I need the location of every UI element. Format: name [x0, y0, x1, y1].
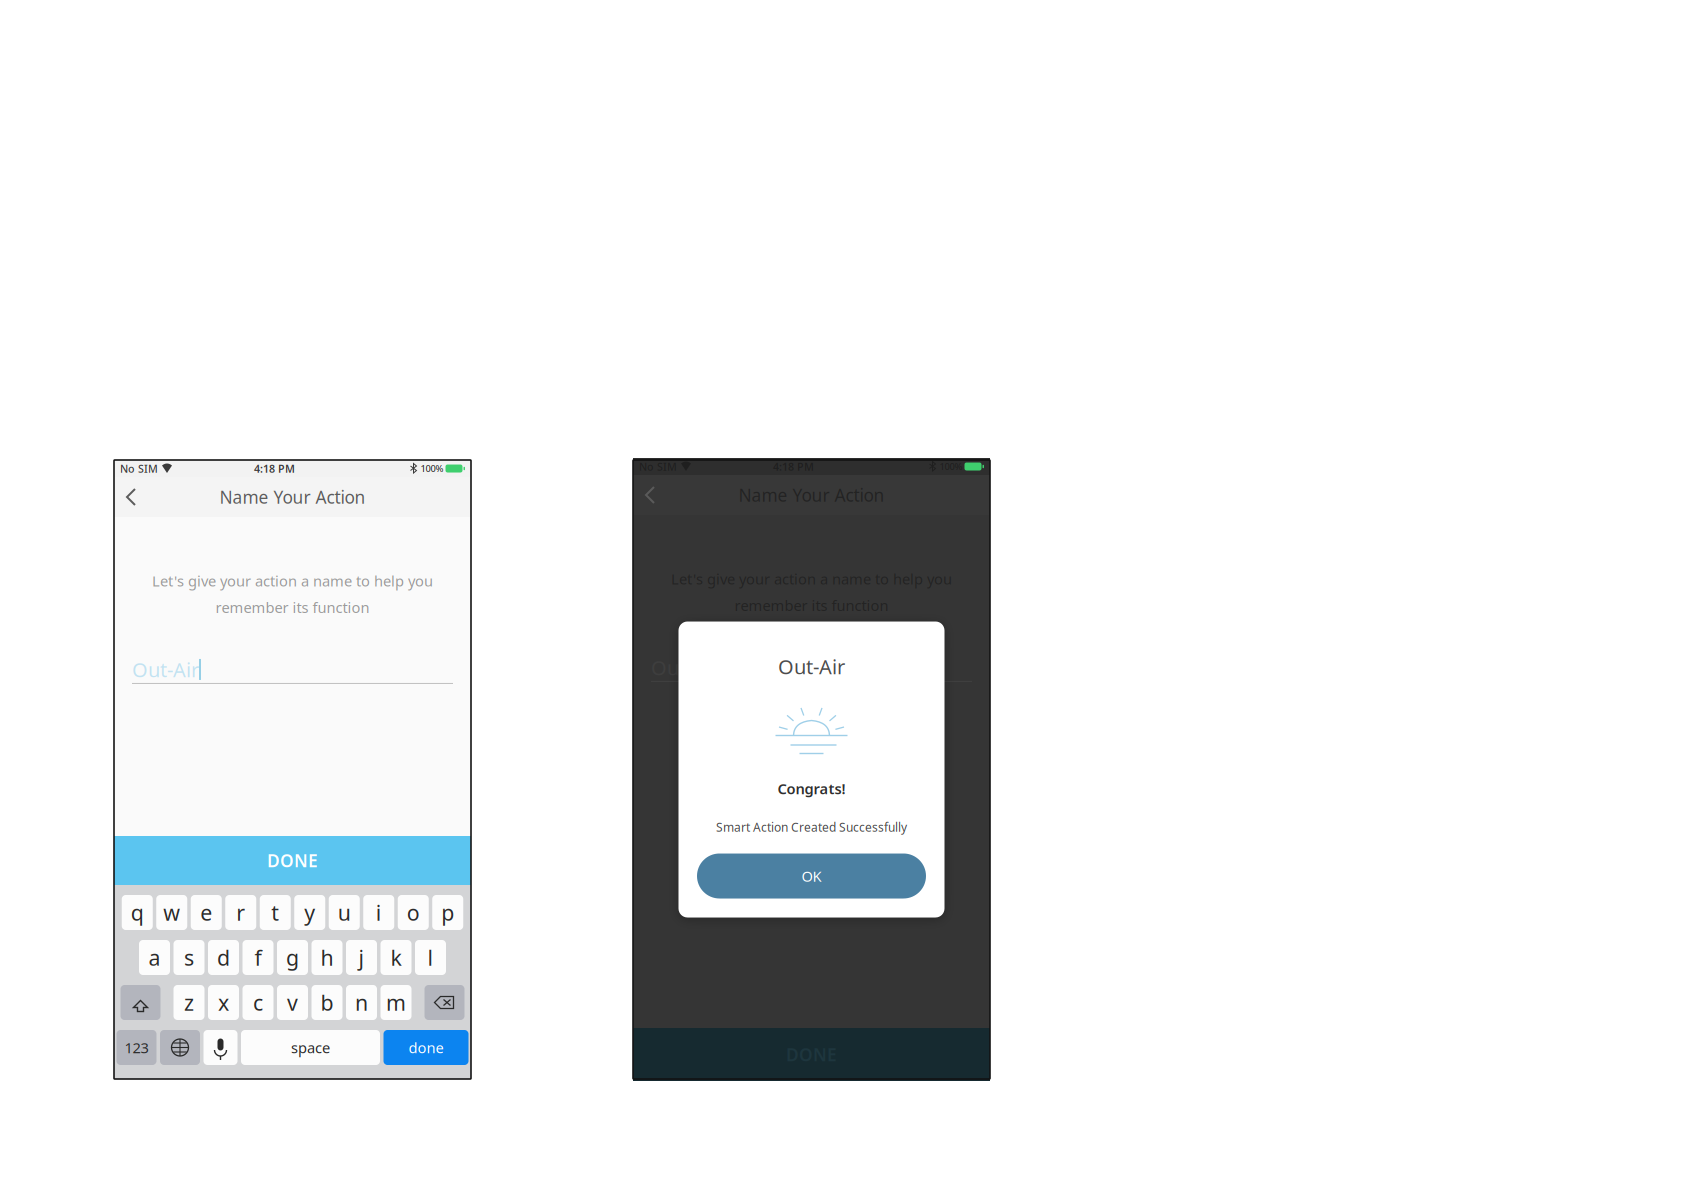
button[interactable]: k	[380, 940, 411, 975]
staticText: Out-Air	[132, 656, 199, 683]
staticText: remember its function	[734, 595, 888, 615]
staticText: w	[163, 898, 180, 927]
button[interactable]: DONE	[114, 836, 471, 885]
staticText: Smart Action Created Successfully	[716, 819, 907, 835]
staticText: c	[253, 988, 263, 1017]
button[interactable]: l	[415, 940, 446, 975]
staticText: l	[427, 943, 433, 972]
button[interactable]: j	[346, 940, 377, 975]
staticText: s	[184, 943, 194, 972]
button[interactable]: g	[277, 940, 308, 975]
button[interactable]: w	[156, 895, 187, 930]
staticText: d	[217, 943, 230, 972]
staticText: Out-Air	[778, 653, 845, 680]
button[interactable]: OK	[697, 853, 926, 898]
staticText: q	[131, 898, 144, 927]
staticText: 4:18 PM	[773, 459, 814, 474]
button[interactable]: t	[260, 895, 291, 930]
button[interactable]: space	[241, 1030, 380, 1065]
button[interactable]: y	[294, 895, 325, 930]
staticText: o	[407, 898, 420, 927]
staticText: y	[304, 898, 315, 927]
button[interactable]: o	[398, 895, 429, 930]
staticText: e	[200, 898, 212, 927]
button[interactable]: d	[208, 940, 239, 975]
button[interactable]: m	[380, 985, 411, 1020]
button[interactable]: Shift	[120, 985, 160, 1020]
staticText: No SIM	[120, 461, 158, 476]
button[interactable]: x	[208, 985, 239, 1020]
staticText: h	[320, 943, 333, 972]
staticText: No SIM	[639, 459, 677, 474]
staticText: DONE	[786, 1043, 837, 1066]
staticText: Out-Air	[651, 654, 718, 681]
staticText: j	[358, 943, 364, 972]
button[interactable]: 123	[116, 1030, 156, 1065]
button[interactable]: e	[191, 895, 222, 930]
staticText: done	[408, 1038, 443, 1057]
staticText: 4:18 PM	[254, 461, 295, 476]
staticText: r	[236, 898, 245, 927]
button[interactable]: p	[432, 895, 463, 930]
staticText: a	[148, 943, 160, 972]
button[interactable]: b	[311, 985, 342, 1020]
button[interactable]: u	[329, 895, 360, 930]
button[interactable]: Back	[114, 477, 148, 517]
staticText: Name Your Action	[738, 483, 884, 506]
button[interactable]: Back	[633, 475, 667, 515]
staticText: g	[286, 943, 299, 972]
button[interactable]: v	[277, 985, 308, 1020]
button[interactable]: DONE	[633, 1028, 990, 1081]
staticText: Let's give your action a name to help yo…	[671, 569, 952, 588]
staticText: k	[390, 943, 401, 972]
button[interactable]: h	[311, 940, 342, 975]
staticText: m	[386, 988, 406, 1017]
staticText: t	[271, 898, 279, 927]
staticText: Congrats!	[777, 779, 845, 798]
staticText: z	[184, 988, 194, 1017]
staticText: remember its function	[215, 597, 369, 617]
staticText: v	[287, 988, 298, 1017]
button[interactable]: s	[173, 940, 204, 975]
button[interactable]: a	[139, 940, 170, 975]
staticText: 100%	[939, 460, 962, 473]
staticText: Name Your Action	[219, 485, 365, 508]
staticText: DONE	[267, 849, 318, 872]
staticText: n	[355, 988, 368, 1017]
staticText: f	[254, 943, 261, 972]
staticText: space	[291, 1038, 330, 1057]
button[interactable]: q	[122, 895, 153, 930]
button[interactable]: r	[225, 895, 256, 930]
button[interactable]: n	[346, 985, 377, 1020]
button[interactable]: c	[242, 985, 273, 1020]
staticText: 100%	[420, 462, 443, 475]
button[interactable]: Next keyboard	[160, 1030, 200, 1065]
button[interactable]: Dictate	[203, 1030, 237, 1065]
staticText: Let's give your action a name to help yo…	[152, 571, 433, 590]
button[interactable]: Delete	[424, 985, 464, 1020]
staticText: i	[376, 898, 382, 927]
button[interactable]: z	[173, 985, 204, 1020]
button[interactable]: f	[242, 940, 273, 975]
staticText: p	[441, 898, 454, 927]
button[interactable]: i	[363, 895, 394, 930]
staticText: b	[320, 988, 333, 1017]
staticText: u	[338, 898, 351, 927]
button[interactable]: done	[383, 1030, 468, 1065]
staticText: OK	[801, 866, 821, 886]
staticText: 123	[124, 1038, 148, 1057]
staticText: x	[218, 988, 229, 1017]
